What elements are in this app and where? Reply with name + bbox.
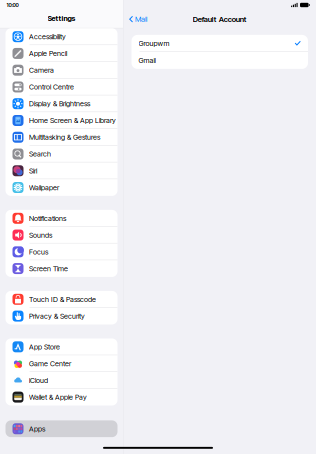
- button[interactable]: App Store: [5, 338, 117, 355]
- staticText: Search: [29, 150, 51, 158]
- staticText: Multitasking & Gestures: [29, 133, 100, 142]
- staticText: Sounds: [29, 231, 52, 239]
- staticText: Groupwm: [138, 39, 169, 48]
- button[interactable]: Apple Pencil: [5, 45, 117, 62]
- staticText: iCloud: [29, 376, 48, 385]
- staticText: Focus: [29, 247, 48, 256]
- button[interactable]: Mail: [123, 12, 147, 27]
- staticText: Display & Brightness: [29, 99, 90, 108]
- staticText: Accessibility: [29, 32, 66, 41]
- staticText: App Store: [29, 342, 60, 351]
- staticText: 10:00: [7, 2, 19, 8]
- staticText: Gmail: [138, 56, 155, 65]
- button[interactable]: Multitasking & Gestures: [5, 129, 117, 146]
- staticText: Default Account: [193, 15, 247, 24]
- staticText: Game Center: [29, 359, 71, 368]
- staticText: Apple Pencil: [29, 49, 67, 58]
- button[interactable]: Control Centre: [5, 79, 117, 95]
- button[interactable]: Gmail: [131, 52, 308, 69]
- staticText: Control Centre: [29, 83, 74, 91]
- staticText: Privacy & Security: [29, 312, 85, 320]
- button[interactable]: Home Screen & App Library: [5, 112, 117, 129]
- button[interactable]: Siri: [5, 162, 117, 179]
- button[interactable]: Search: [5, 146, 117, 162]
- button[interactable]: Touch ID & Passcode: [5, 291, 117, 308]
- button[interactable]: Apps: [5, 420, 117, 437]
- button[interactable]: Focus: [5, 243, 117, 260]
- button[interactable]: Privacy & Security: [5, 308, 117, 324]
- staticText: Touch ID & Passcode: [29, 295, 96, 304]
- staticText: Siri: [29, 166, 37, 175]
- button[interactable]: Camera: [5, 62, 117, 79]
- button[interactable]: Display & Brightness: [5, 95, 117, 112]
- staticText: Notifications: [29, 214, 66, 223]
- staticText: Settings: [47, 14, 75, 23]
- button[interactable]: Game Center: [5, 355, 117, 372]
- button[interactable]: Groupwm: [131, 35, 308, 52]
- button[interactable]: Sounds: [5, 227, 117, 243]
- staticText: Wallet & Apple Pay: [29, 393, 87, 401]
- button[interactable]: Wallet & Apple Pay: [5, 389, 117, 405]
- staticText: Apps: [29, 424, 45, 433]
- button[interactable]: Screen Time: [5, 260, 117, 277]
- staticText: Camera: [29, 66, 54, 74]
- staticText: Mail: [135, 15, 147, 24]
- button[interactable]: Accessibility: [5, 28, 117, 45]
- staticText: Home Screen & App Library: [29, 116, 116, 125]
- staticText: Wallpaper: [29, 183, 59, 192]
- button[interactable]: Wallpaper: [5, 179, 117, 196]
- staticText: Screen Time: [29, 264, 68, 273]
- button[interactable]: Notifications: [5, 210, 117, 227]
- button[interactable]: iCloud: [5, 372, 117, 389]
